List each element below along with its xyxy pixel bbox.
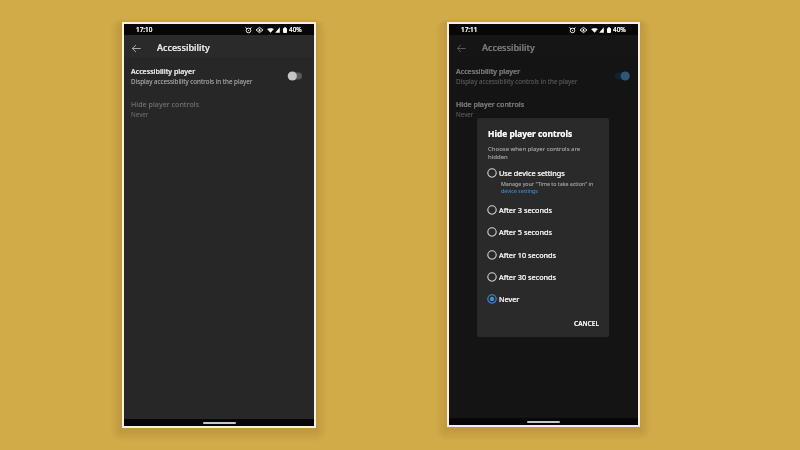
- staticText: Never: [456, 110, 474, 119]
- staticText: After 5 seconds: [499, 227, 552, 237]
- button[interactable]: CANCEL: [570, 316, 604, 331]
- button[interactable]: Accessibility player: [449, 66, 638, 86]
- staticText: After 10 seconds: [499, 250, 557, 260]
- staticText: CANCEL: [574, 319, 600, 328]
- staticText: Display accessibility controls in the pl…: [131, 77, 253, 86]
- staticText: Hide player controls: [456, 99, 525, 109]
- staticText: Accessibility player: [131, 66, 196, 76]
- staticText: Hide player controls: [488, 128, 573, 139]
- staticText: Never: [499, 294, 520, 304]
- staticText: Hide player controls: [131, 99, 200, 109]
- button[interactable]: Accessibility player toggle: [607, 68, 629, 84]
- staticText: 40%: [289, 25, 302, 34]
- staticText: 17:10: [136, 25, 153, 34]
- staticText: Display accessibility controls in the pl…: [456, 77, 578, 86]
- staticText: Accessibility player: [456, 66, 521, 76]
- button[interactable]: Use device settings: [477, 162, 609, 184]
- button[interactable]: After 10 seconds: [477, 244, 609, 266]
- staticText: 40%: [613, 25, 626, 34]
- button[interactable]: Never: [477, 288, 609, 310]
- staticText: 17:11: [461, 25, 478, 34]
- button[interactable]: Back: [454, 41, 469, 56]
- button[interactable]: Accessibility player: [124, 66, 314, 86]
- button[interactable]: After 5 seconds: [477, 221, 609, 243]
- button[interactable]: Back: [129, 41, 144, 56]
- staticText: Accessibility: [157, 41, 210, 53]
- staticText: Never: [131, 110, 149, 119]
- staticText: Choose when player controls are hidden: [488, 145, 581, 161]
- staticText: After 3 seconds: [499, 205, 552, 215]
- button[interactable]: Hide player controls: [449, 99, 638, 119]
- staticText: Use device settings: [499, 168, 565, 178]
- button[interactable]: Hide player controls: [124, 99, 314, 119]
- staticText: device settings: [501, 187, 538, 194]
- button[interactable]: After 30 seconds: [477, 266, 609, 288]
- button[interactable]: Accessibility player toggle: [280, 68, 302, 84]
- staticText: Accessibility: [482, 41, 535, 53]
- staticText: After 30 seconds: [499, 272, 557, 282]
- button[interactable]: After 3 seconds: [477, 199, 609, 221]
- staticText: Manage your "Time to take action" in: [501, 180, 594, 187]
